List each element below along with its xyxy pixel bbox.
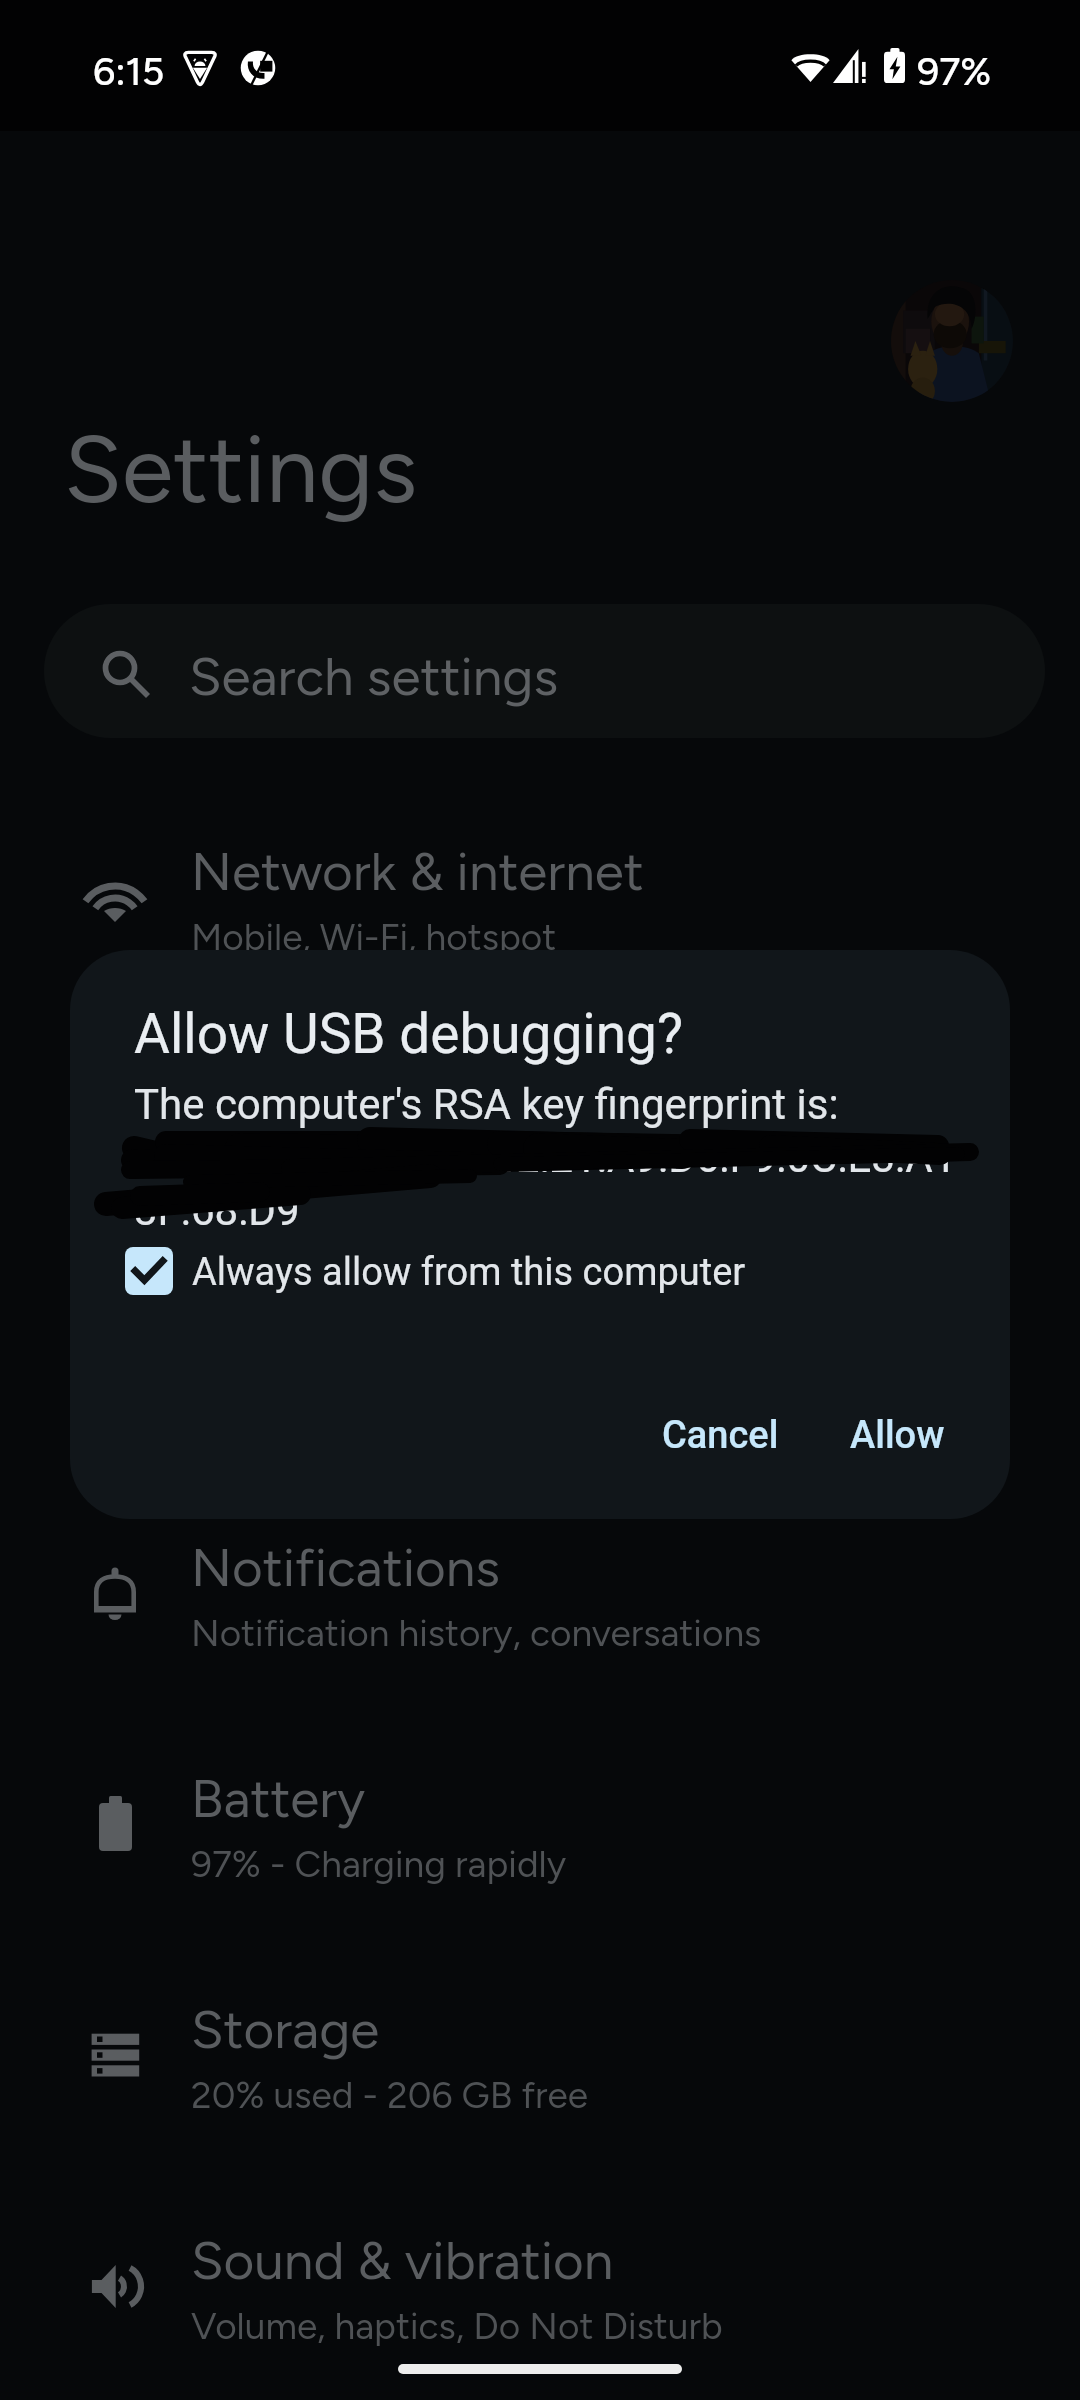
button[interactable] (802, 1390, 941, 1490)
staticText: Sound & vibration (191, 2229, 614, 2293)
staticText: 3F:68:D9 (134, 1186, 300, 1235)
button[interactable] (0, 1042, 1080, 1232)
staticText: The computer's RSA key fingerprint is: (134, 1080, 839, 1129)
button[interactable] (0, 1968, 1080, 2158)
staticText: Notification history, conversations (191, 1611, 762, 1655)
button[interactable] (618, 1390, 782, 1490)
staticText: Settings (64, 413, 418, 526)
staticText: Search settings (189, 645, 559, 709)
staticText: 97% (917, 48, 992, 95)
staticText: Mobile, Wi-Fi, hotspot (191, 915, 557, 959)
button[interactable] (108, 1230, 868, 1312)
button[interactable] (0, 1274, 1080, 1464)
staticText: 7A:B2:29:9D:5F:C6:4E:21:A9:D6:F9:0C:E3:A… (134, 1133, 957, 1182)
staticText: Allow USB debugging? (134, 1002, 683, 1066)
staticText: Bluetooth, pairing (191, 1147, 485, 1191)
button[interactable] (0, 810, 1080, 1000)
button[interactable] (44, 604, 1045, 738)
staticText: Allow (850, 1413, 945, 1458)
staticText: Notifications (191, 1536, 500, 1600)
staticText: Always allow from this computer (192, 1250, 746, 1295)
staticText: Connected devices (191, 1072, 652, 1136)
staticText: Volume, haptics, Do Not Disturb (191, 2304, 723, 2348)
staticText: Cancel (662, 1413, 779, 1458)
button[interactable] (0, 1506, 1080, 1696)
button[interactable] (0, 2199, 1080, 2389)
staticText: Storage (191, 1998, 380, 2062)
staticText: 20% used - 206 GB free (191, 2073, 589, 2117)
staticText: Battery (191, 1767, 366, 1831)
button[interactable]: Account (891, 280, 1013, 402)
button[interactable] (0, 1737, 1080, 1927)
staticText: Network & internet (191, 840, 644, 904)
staticText: 97% - Charging rapidly (191, 1842, 567, 1886)
staticText: 6:15 (93, 48, 165, 95)
